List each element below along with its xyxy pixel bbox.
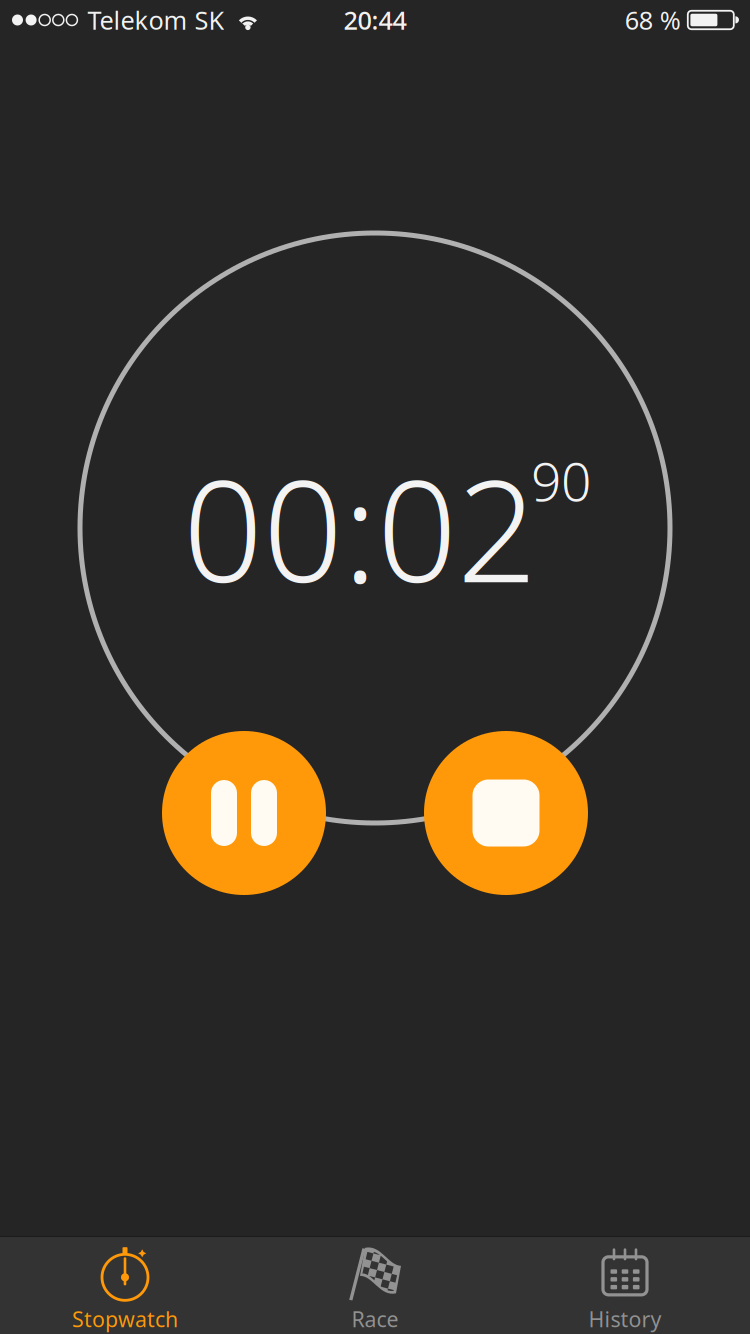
button[interactable]: History xyxy=(500,1236,750,1334)
staticText: History xyxy=(588,1305,661,1333)
button[interactable]: Stop xyxy=(424,731,588,895)
staticText: 20:44 xyxy=(343,3,406,37)
staticText: Race xyxy=(351,1305,398,1333)
staticText: Telekom SK xyxy=(87,3,224,37)
staticText: 00:02 xyxy=(183,435,537,621)
staticText: 90 xyxy=(531,445,591,516)
button[interactable]: Pause xyxy=(162,731,326,895)
button[interactable]: Stopwatch xyxy=(0,1236,250,1334)
staticText: Stopwatch xyxy=(72,1305,178,1333)
staticText: 68 % xyxy=(625,3,681,37)
button[interactable]: Race xyxy=(250,1236,500,1334)
